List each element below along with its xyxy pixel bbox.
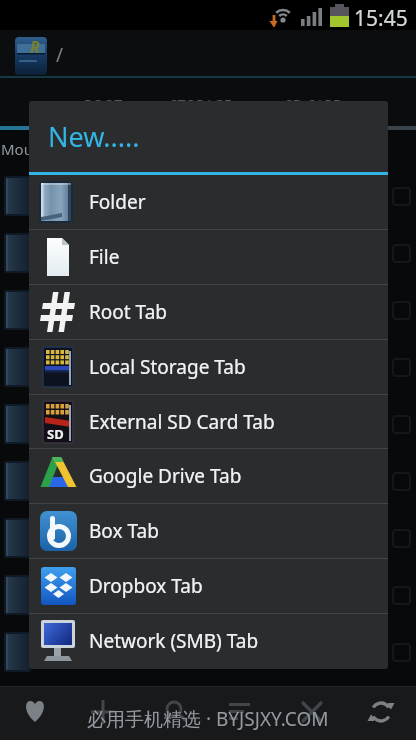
staticText: STORAGE [170, 95, 232, 114]
staticText: New..... [48, 118, 140, 155]
staticText: External SD Card Tab [89, 409, 275, 435]
button[interactable]: Local Storage Tab [29, 340, 388, 395]
button[interactable]: Root Tab [29, 285, 388, 340]
button[interactable]: SD [29, 395, 388, 449]
staticText: 必用手机精选 · BYJSJXY.COM [87, 706, 329, 732]
button[interactable]: Dropbox Tab [29, 559, 388, 614]
staticText: Google Drive Tab [89, 463, 242, 489]
staticText: Dropbox Tab [89, 573, 203, 599]
staticText: Root Tab [89, 299, 167, 325]
staticText: / [56, 42, 64, 68]
staticText: R [30, 36, 40, 58]
staticText: ROOT [84, 95, 122, 114]
button[interactable]: File [29, 230, 388, 285]
staticText: File [89, 244, 120, 270]
button[interactable]: Google Drive Tab [29, 449, 388, 504]
button[interactable]: Network (SMB) Tab [29, 614, 388, 669]
button[interactable]: Folder [29, 175, 388, 230]
staticText: SD CARD [285, 95, 344, 114]
staticText: Mou [1, 139, 33, 159]
staticText: Network (SMB) Tab [89, 628, 259, 654]
staticText: SD [47, 425, 64, 443]
staticText: Folder [89, 189, 146, 215]
button[interactable]: Box Tab [29, 504, 388, 559]
staticText: Box Tab [89, 518, 159, 544]
staticText: 15:45 [354, 4, 408, 33]
staticText: Local Storage Tab [89, 354, 246, 380]
